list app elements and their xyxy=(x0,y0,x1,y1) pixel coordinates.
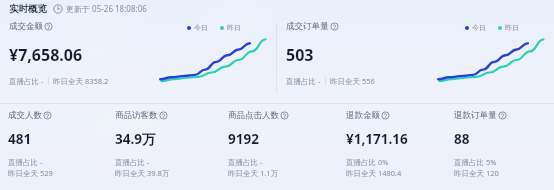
staticText: ¥7,658.06 xyxy=(9,44,83,66)
staticText: 昨日全天 556 xyxy=(330,76,375,86)
staticText: 昨日全天 1480.4 xyxy=(346,168,402,178)
staticText: 昨日全天 39.8万 xyxy=(115,168,170,178)
staticText: 直播占比 - xyxy=(8,157,43,167)
staticText: 直播占比 - xyxy=(286,76,321,86)
staticText: 直播占比 - xyxy=(228,157,263,167)
staticText: 直播占比 - xyxy=(115,157,150,167)
staticText: 商品点击人数 xyxy=(228,110,279,121)
staticText: 成交订单量 xyxy=(286,21,329,32)
staticText: 成交人数 xyxy=(8,110,42,121)
staticText: 9192 xyxy=(228,130,259,148)
staticText: 成交金额 xyxy=(9,21,43,32)
button[interactable]: 成交金额 xyxy=(0,17,276,103)
staticText: 今日 xyxy=(472,23,486,32)
button[interactable]: 成交订单量 xyxy=(277,17,554,103)
other: 更新时间 xyxy=(53,4,63,14)
staticText: 商品访客数 xyxy=(115,110,158,121)
button[interactable]: 成交人数 xyxy=(0,104,107,190)
staticText: 昨日全天 529 xyxy=(8,168,53,178)
button[interactable]: 退款订单量 xyxy=(446,104,554,190)
staticText: 实时概览 xyxy=(9,3,47,15)
button[interactable]: 商品访客数 xyxy=(107,104,220,190)
staticText: 直播占比 - xyxy=(9,76,44,86)
staticText: 34.9万 xyxy=(115,130,156,148)
staticText: 503 xyxy=(286,44,314,66)
staticText: 481 xyxy=(8,130,32,148)
staticText: 昨日 xyxy=(505,23,519,32)
staticText: 直播占比 0% xyxy=(346,157,389,167)
button[interactable]: 退款金额 xyxy=(338,104,446,190)
staticText: 昨日全天 8358.2 xyxy=(53,76,109,86)
staticText: 88 xyxy=(454,130,470,148)
staticText: 昨日全天 1.1万 xyxy=(228,168,279,178)
staticText: 今日 xyxy=(194,23,208,32)
staticText: 更新于 05-26 18:08:06 xyxy=(66,3,147,14)
staticText: ¥1,171.16 xyxy=(346,130,408,148)
staticText: 直播占比 5% xyxy=(454,157,497,167)
staticText: 退款订单量 xyxy=(454,110,497,121)
staticText: 退款金额 xyxy=(346,110,380,121)
staticText: 昨日 xyxy=(227,23,241,32)
staticText: 昨日全天 120 xyxy=(454,168,499,178)
button[interactable]: 商品点击人数 xyxy=(220,104,338,190)
